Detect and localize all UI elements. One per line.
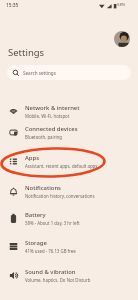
staticText: Bluetooth, pairing — [25, 134, 62, 140]
staticText: Connected devices — [25, 125, 78, 133]
button[interactable]: Sound & vibration — [0, 264, 138, 286]
staticText: 15:35 — [6, 2, 19, 9]
button[interactable]: Apps — [0, 150, 138, 172]
button[interactable]: Search settings — [7, 65, 131, 80]
staticText: Mobile, Wi-Fi, hotspot — [25, 113, 70, 119]
staticText: 58% — [117, 2, 126, 8]
staticText: Assistant, recent apps, default apps — [25, 163, 98, 169]
staticText: Storage — [25, 239, 47, 247]
staticText: Battery — [25, 211, 46, 219]
staticText: 58% - About 1 day, 3 hr left — [25, 220, 80, 226]
button[interactable] — [114, 31, 130, 47]
staticText: 41% used - 76.13 GB free — [25, 248, 76, 254]
button[interactable]: Storage — [0, 235, 138, 257]
staticText: Search settings — [23, 70, 56, 76]
button[interactable]: Notifications — [0, 180, 138, 202]
staticText: Apps — [25, 154, 40, 162]
button[interactable]: Connected devices — [0, 121, 138, 143]
staticText: Settings — [8, 46, 45, 59]
button[interactable]: Battery — [0, 207, 138, 229]
staticText: Notifications — [25, 184, 61, 192]
staticText: Network & internet — [25, 104, 80, 112]
staticText: Sound & vibration — [25, 268, 76, 276]
staticText: Volume, haptics, Do Not Disturb — [25, 277, 91, 283]
staticText: Notification history, conversations — [25, 193, 95, 199]
button[interactable]: Network & internet — [0, 100, 138, 122]
